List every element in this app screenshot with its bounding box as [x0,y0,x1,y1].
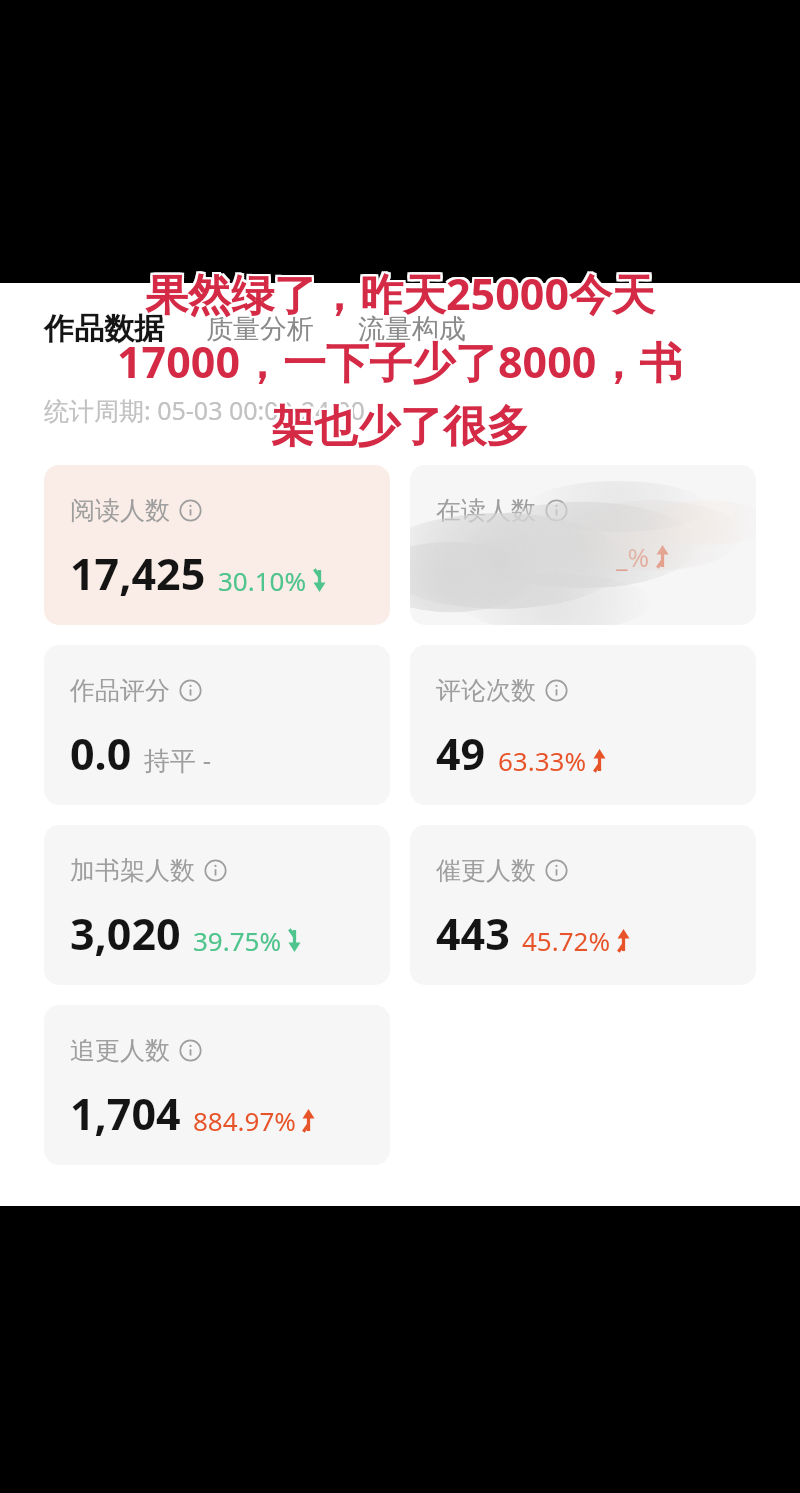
staticText: 17000，一下子少了8000，书 [117,330,683,389]
staticText: 架也少了很多 [269,402,527,456]
staticText: 45.72% [522,923,611,958]
button[interactable]: 质量分析 [206,309,314,349]
other: Info [179,679,202,702]
button[interactable]: 追更人数 [44,1005,390,1165]
staticText: 果然绿了，昨天25000今天 [145,262,655,321]
staticText: 17000，一下子少了8000，书 [119,330,685,389]
staticText: 架也少了很多 [273,402,531,456]
staticText: 17000，一下子少了8000，书 [119,332,685,391]
staticText: 果然绿了，昨天25000今天 [143,266,653,325]
staticText: 63.33% [498,743,587,778]
staticText: 评论次数 [436,675,536,706]
staticText: 17,425 [70,544,206,603]
button[interactable]: 作品数据 [44,307,164,351]
staticText: 0.0 [70,724,132,783]
other: Info [545,499,568,522]
staticText: 果然绿了，昨天25000今天 [147,264,657,323]
other: Info [179,1039,202,1062]
staticText: 30.10% [218,563,307,598]
staticText: 3,020 [70,904,181,963]
staticText: 49 [436,724,486,783]
staticText: 架也少了很多 [269,398,527,452]
button[interactable]: 评论次数 [410,645,756,805]
other: Info [545,859,568,882]
staticText: 在读人数 [436,495,536,526]
staticText: 果然绿了，昨天25000今天 [147,262,657,321]
staticText: 架也少了很多 [271,398,529,452]
staticText: 果然绿了，昨天25000今天 [143,262,653,321]
staticText: 果然绿了，昨天25000今天 [145,264,655,323]
staticText: 架也少了很多 [271,402,529,456]
button[interactable]: 阅读人数 [44,465,390,625]
staticText: 果然绿了，昨天25000今天 [147,266,657,325]
staticText: 443 [436,904,510,963]
staticText: 持平 - [144,742,212,778]
staticText: 追更人数 [70,1035,170,1066]
staticText: 质量分析 [206,312,314,346]
staticText: _% [616,539,650,574]
staticText: 17000，一下子少了8000，书 [115,332,681,391]
staticText: 流量构成 [358,312,466,346]
staticText: 果然绿了，昨天25000今天 [143,264,653,323]
staticText: 架也少了很多 [273,398,531,452]
button[interactable]: 在读人数 [410,465,756,625]
button[interactable]: 加书架人数 [44,825,390,985]
other: Info [179,499,202,522]
staticText: 884.97% [193,1103,296,1138]
staticText: 作品评分 [70,675,170,706]
staticText: 17000，一下子少了8000，书 [115,334,681,393]
other: Info [545,679,568,702]
other: Info [204,859,227,882]
staticText: 17000，一下子少了8000，书 [117,332,683,391]
staticText: 17000，一下子少了8000，书 [117,334,683,393]
staticText: 17000，一下子少了8000，书 [119,334,685,393]
staticText: 17000，一下子少了8000，书 [115,330,681,389]
staticText: 1,704 [70,1084,181,1143]
staticText: 催更人数 [436,855,536,886]
button[interactable]: 催更人数 [410,825,756,985]
staticText: 架也少了很多 [271,400,529,454]
staticText: 39.75% [193,923,282,958]
button[interactable]: 流量构成 [358,309,466,349]
staticText: 架也少了很多 [273,400,531,454]
staticText: 架也少了很多 [269,400,527,454]
staticText: 统计周期: 05-03 00:00-24:00 [44,393,365,427]
staticText: 加书架人数 [70,855,195,886]
staticText: 作品数据 [44,310,164,348]
staticText: 果然绿了，昨天25000今天 [145,266,655,325]
button[interactable]: 作品评分 [44,645,390,805]
staticText: 阅读人数 [70,495,170,526]
